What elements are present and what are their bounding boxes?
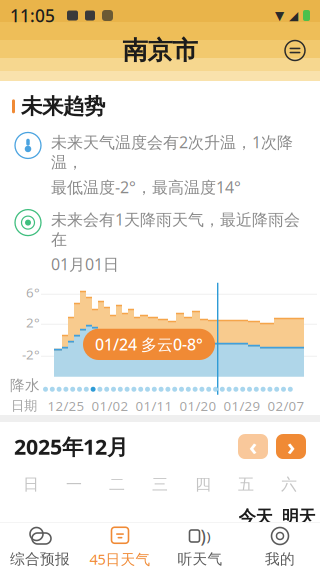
staticText: 12/25: [47, 397, 84, 415]
staticText: 降水: [10, 376, 40, 394]
staticText: 2°: [26, 313, 40, 331]
staticText: 明天: [281, 506, 315, 528]
staticText: 六: [281, 475, 297, 494]
staticText: 11:05: [10, 4, 55, 27]
staticText: 未来会有1天降雨天气，最近降雨会在: [51, 209, 300, 249]
staticText: 01/02: [91, 397, 128, 415]
staticText: 四: [195, 475, 211, 494]
staticText: 五: [238, 475, 254, 494]
staticText: 今天: [238, 506, 272, 528]
staticText: ): [206, 527, 210, 545]
button[interactable]: 我的: [240, 522, 320, 568]
staticText: 01/11: [135, 397, 172, 415]
staticText: 二: [109, 475, 125, 494]
staticText: ‹: [249, 431, 257, 462]
button[interactable]: 45日天气: [80, 522, 160, 568]
staticText: 02/07: [267, 397, 304, 415]
staticText: ▼: [275, 9, 284, 22]
staticText: 最低温度-2°，最高温度14°: [51, 176, 241, 198]
staticText: 未来天气温度会有2次升温，1次降温，: [51, 131, 293, 172]
staticText: 未来趋势: [21, 93, 105, 119]
staticText: 日期: [11, 398, 37, 414]
staticText: ›: [287, 431, 295, 462]
staticText: 6°: [26, 283, 40, 301]
staticText: -2°: [22, 345, 40, 363]
staticText: 2025年12月: [14, 432, 128, 461]
staticText: 01/24 多云0-8°: [95, 334, 203, 355]
button[interactable]: Switch city: [278, 33, 312, 67]
staticText: 45日天气: [89, 549, 150, 568]
button[interactable]: Next month: [276, 434, 306, 459]
staticText: 听天气: [177, 550, 222, 568]
staticText: 三: [152, 475, 168, 494]
staticText: 01/29: [223, 397, 260, 415]
staticText: 我的: [265, 550, 295, 568]
staticText: 01/20: [179, 397, 216, 415]
staticText: 一: [66, 475, 82, 494]
staticText: ◢: [289, 9, 298, 22]
button[interactable]: ): [160, 522, 240, 568]
button[interactable]: 综合预报: [0, 522, 80, 568]
staticText: 综合预报: [10, 550, 70, 568]
button[interactable]: Previous month: [238, 434, 268, 459]
staticText: 日: [23, 475, 39, 494]
staticText: ): [200, 524, 205, 547]
staticText: 01月01日: [51, 253, 119, 275]
staticText: 南京市: [122, 35, 197, 66]
